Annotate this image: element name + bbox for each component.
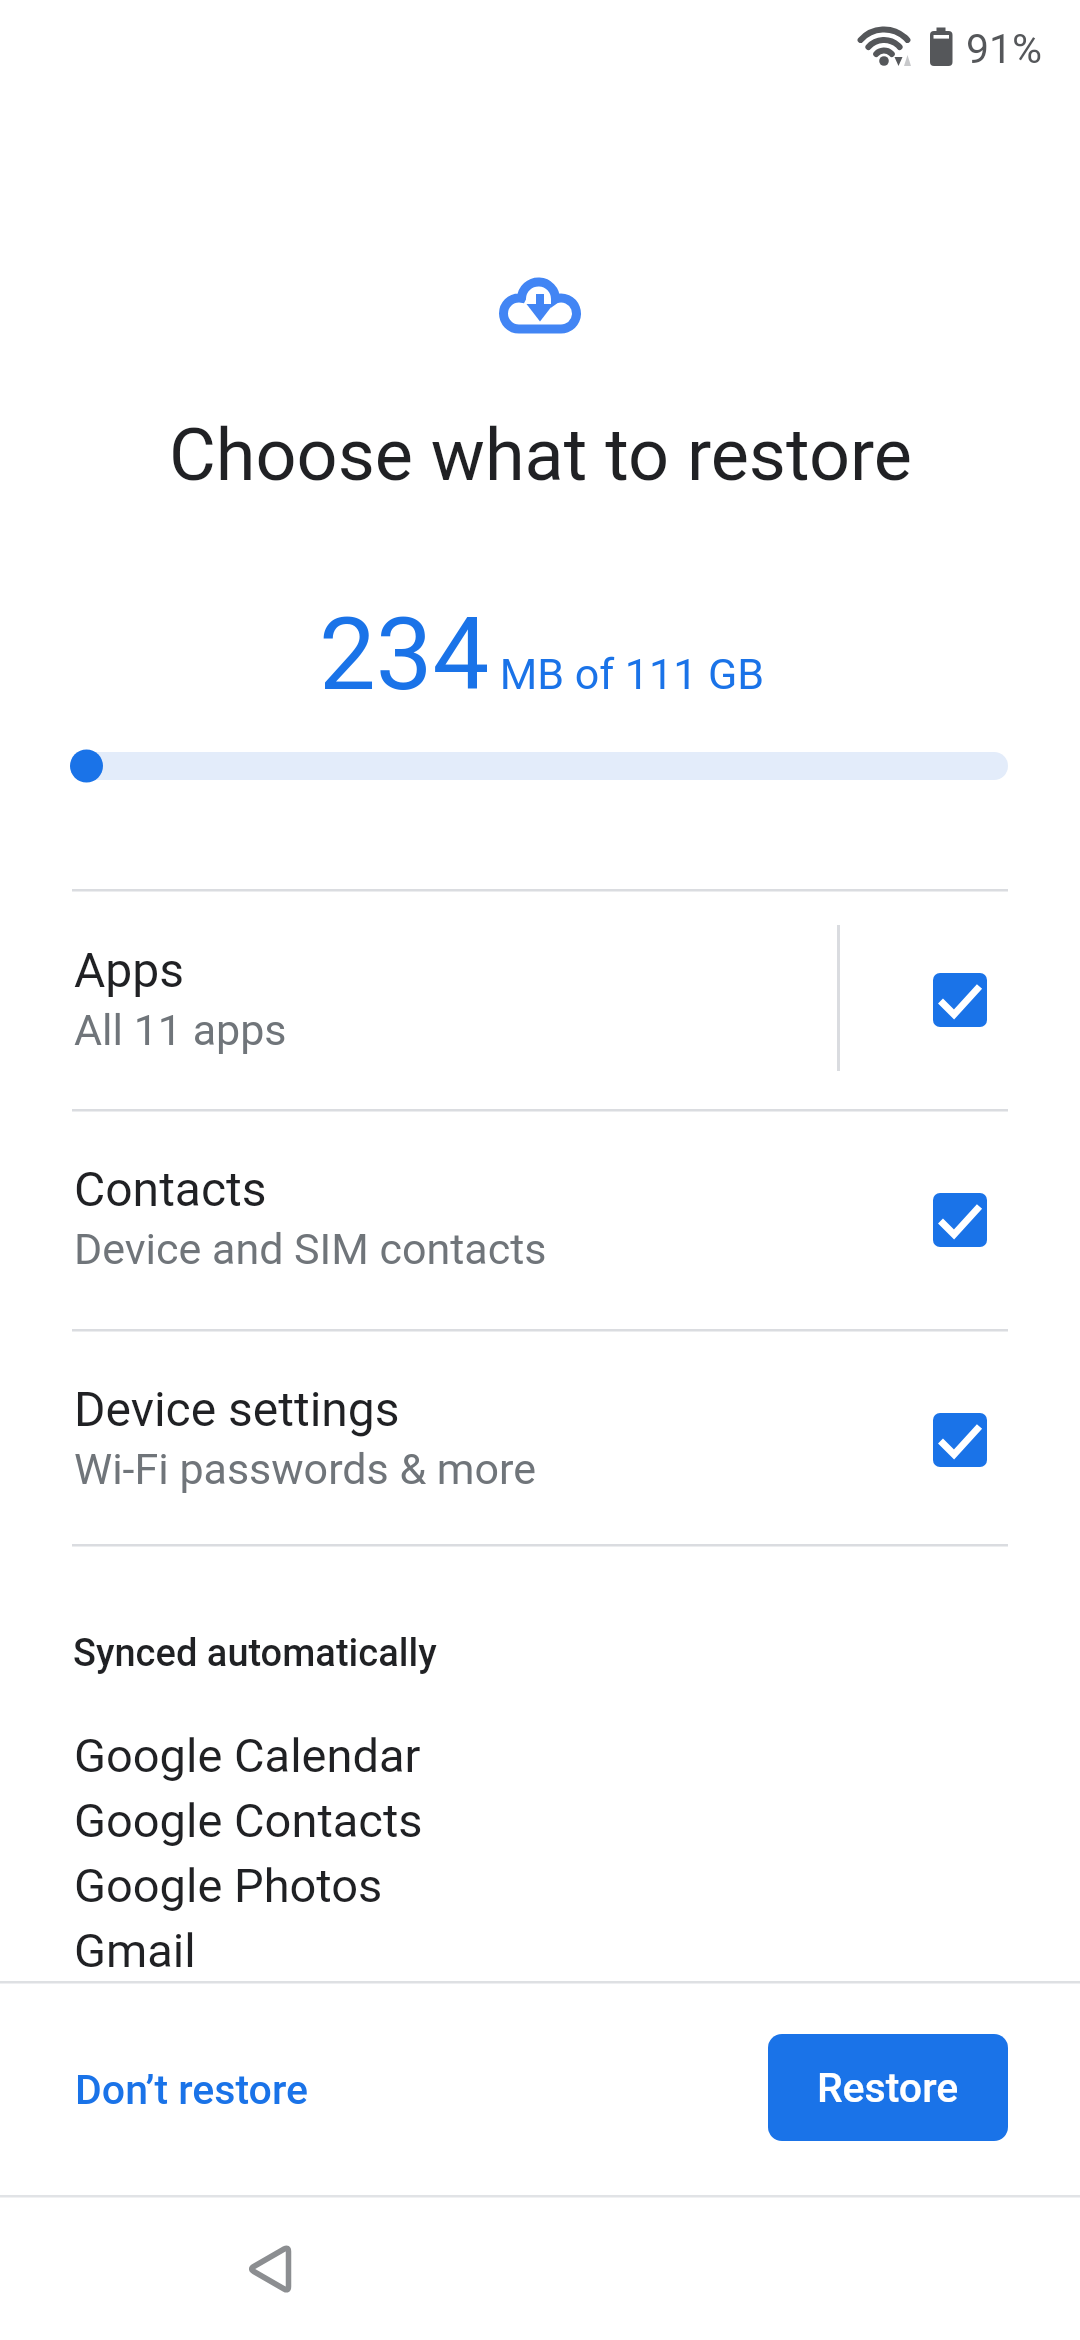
staticText: Gmail: [74, 1923, 196, 1978]
staticText: Google Calendar: [74, 1728, 421, 1783]
staticText: 91%: [966, 25, 1043, 73]
staticText: Restore: [817, 2064, 959, 2112]
staticText: Don’t restore: [75, 2066, 308, 2114]
button[interactable]: [0, 1330, 1080, 1545]
staticText: Google Photos: [74, 1858, 383, 1913]
button[interactable]: [0, 1110, 1080, 1330]
staticText: Apps: [74, 942, 184, 998]
staticText: Device settings: [74, 1381, 400, 1437]
staticText: Google Contacts: [74, 1793, 423, 1848]
button[interactable]: Restore: [768, 2034, 1008, 2141]
button[interactable]: [920, 1180, 1000, 1260]
staticText: Wi-Fi passwords & more: [74, 1444, 537, 1494]
staticText: Synced automatically: [73, 1631, 437, 1676]
staticText: All 11 apps: [74, 1005, 287, 1055]
staticText: Choose what to restore: [169, 413, 912, 497]
button[interactable]: [210, 2230, 330, 2320]
staticText: 234: [319, 595, 490, 713]
button[interactable]: [0, 890, 1080, 1110]
staticText: Contacts: [74, 1161, 267, 1217]
button[interactable]: Don’t restore: [45, 2036, 335, 2136]
staticText: MB of 111 GB: [489, 649, 765, 699]
button[interactable]: [920, 960, 1000, 1040]
staticText: Device and SIM contacts: [74, 1224, 547, 1274]
button[interactable]: [920, 1400, 1000, 1480]
